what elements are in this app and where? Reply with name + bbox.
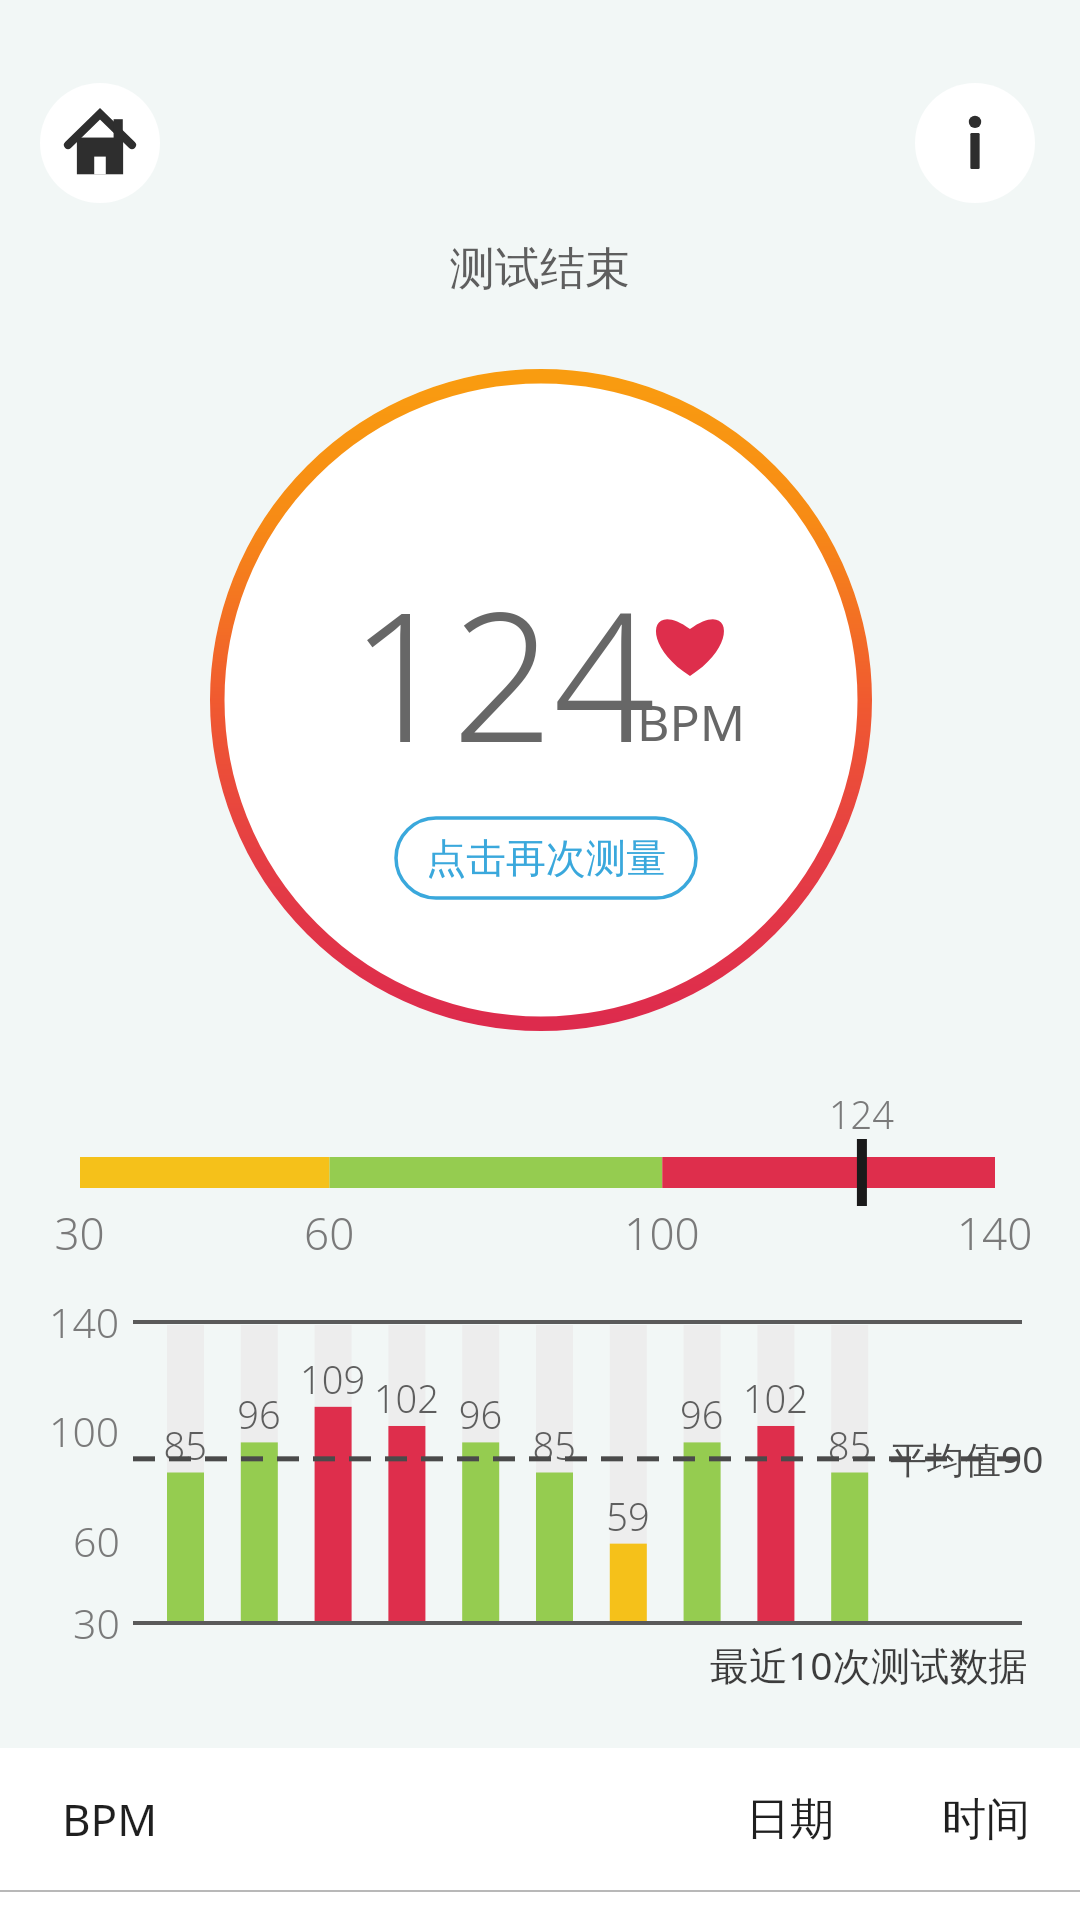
button[interactable]: Home <box>40 83 160 203</box>
button[interactable]: Information <box>915 83 1035 203</box>
button[interactable]: 日期 <box>746 1792 834 1847</box>
button[interactable]: BPM <box>62 1789 158 1849</box>
staticText: BPM <box>62 1789 158 1849</box>
staticText: 日期 <box>746 1792 834 1847</box>
staticText: 测试结束 <box>450 241 630 298</box>
staticText: 时间 <box>942 1792 1030 1847</box>
button[interactable]: 时间 <box>942 1792 1030 1847</box>
